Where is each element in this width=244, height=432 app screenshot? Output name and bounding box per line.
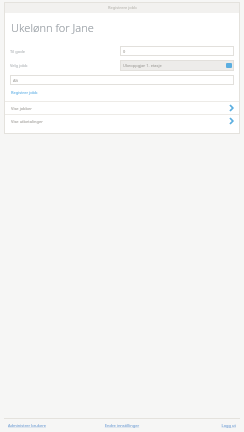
staticText: Ukelønn for Jane [11, 20, 94, 35]
staticText: Til gode [10, 49, 120, 54]
staticText: Endre innstillinger [84, 423, 160, 428]
button[interactable]: Ukeoppgjør 1. etasje [120, 60, 234, 71]
staticText: Vise jobber [11, 106, 229, 111]
staticText: Alt [13, 78, 19, 83]
button[interactable]: Registrer jobb [11, 90, 38, 95]
staticText: 0 [123, 49, 126, 54]
staticText: Ukeoppgjør 1. etasje [123, 63, 226, 68]
button[interactable]: Åpne nedtrekksliste [226, 63, 232, 68]
staticText: Registrere jobb [108, 5, 137, 10]
button[interactable]: Administrer brukere [8, 423, 84, 428]
button[interactable]: Endre innstillinger [84, 423, 160, 428]
staticText: Administrer brukere [8, 423, 84, 428]
button[interactable]: 0 [120, 46, 234, 56]
staticText: Velg jobb [10, 63, 120, 68]
staticText: Vise utbetalinger [11, 119, 229, 124]
staticText: Registrer jobb [11, 90, 38, 95]
button[interactable]: Vise jobber [4, 102, 240, 114]
button[interactable]: Alt [10, 75, 234, 85]
button[interactable]: Vise utbetalinger [4, 115, 240, 127]
staticText: Logg ut [160, 423, 236, 428]
button[interactable]: Logg ut [160, 423, 236, 428]
